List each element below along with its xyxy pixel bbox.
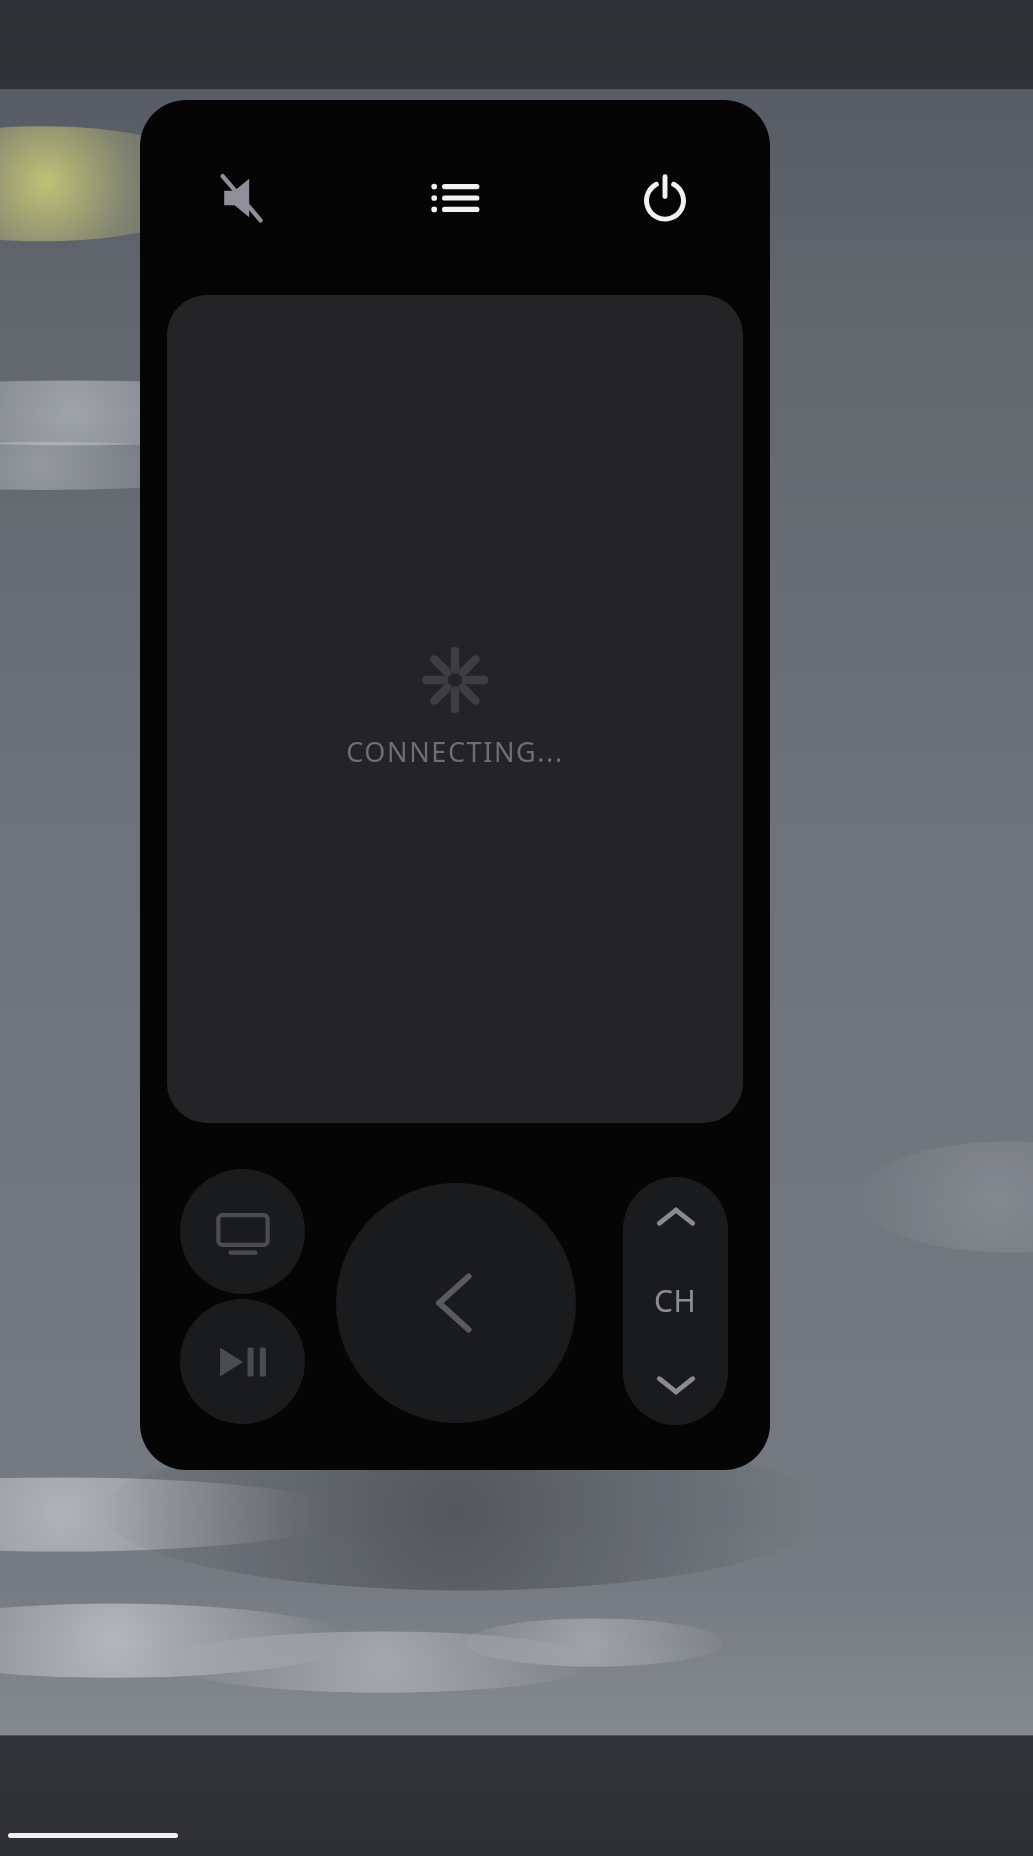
button[interactable]: Input source (180, 1169, 305, 1294)
button[interactable]: Play or pause (180, 1299, 305, 1424)
button[interactable]: CH (623, 1259, 728, 1342)
button[interactable]: Channel list (350, 100, 560, 295)
staticText: CH (654, 1280, 697, 1321)
button[interactable]: Channel up (623, 1177, 728, 1259)
button[interactable]: Channel down (623, 1342, 728, 1425)
button[interactable]: Power (560, 100, 770, 295)
button[interactable]: Back (336, 1183, 576, 1423)
button[interactable]: Mute (140, 100, 350, 295)
staticText: CONNECTING... (346, 733, 564, 770)
